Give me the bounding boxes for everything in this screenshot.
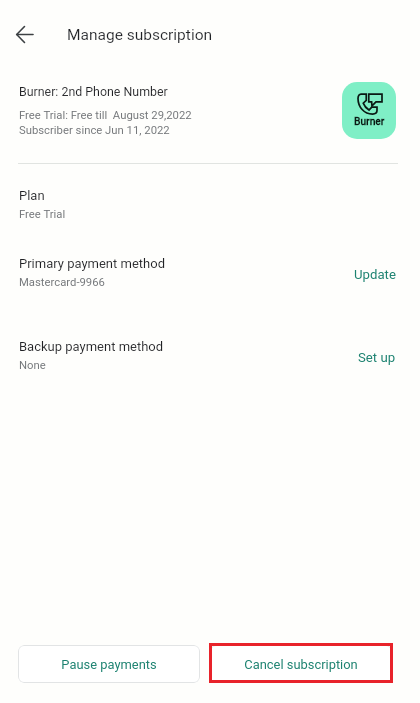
staticText: Free Trial: Free till August 29,2022: [19, 109, 192, 122]
button[interactable]: Update: [341, 261, 396, 287]
staticText: Free Trial: [19, 208, 66, 221]
button[interactable]: Set up: [341, 344, 396, 370]
staticText: Cancel subscription: [244, 657, 358, 672]
button[interactable]: Cancel subscription: [210, 645, 392, 683]
staticText: Primary payment method: [19, 256, 165, 271]
staticText: Burner: [354, 116, 385, 128]
staticText: None: [19, 359, 46, 372]
staticText: Backup payment method: [19, 339, 164, 354]
button[interactable]: Pause payments: [18, 645, 200, 683]
staticText: Manage subscription: [67, 26, 213, 44]
button[interactable]: Back: [4, 14, 44, 54]
staticText: Pause payments: [61, 657, 157, 672]
staticText: Plan: [19, 188, 45, 203]
staticText: Update: [354, 267, 396, 282]
staticText: Mastercard-9966: [19, 276, 105, 289]
staticText: Burner: 2nd Phone Number: [19, 84, 168, 99]
staticText: Subscriber since Jun 11, 2022: [19, 124, 170, 137]
staticText: Set up: [358, 350, 396, 365]
button[interactable]: Burner app: [342, 82, 396, 139]
